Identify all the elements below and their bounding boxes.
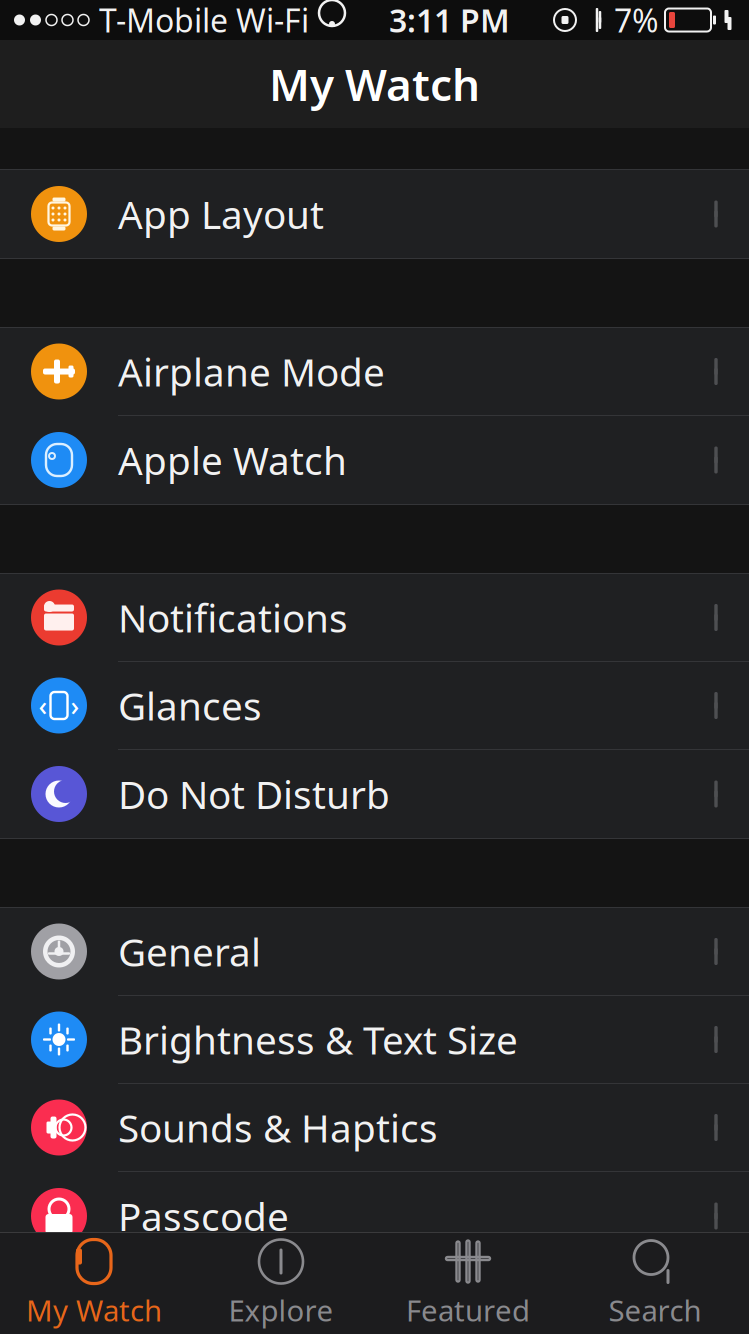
button[interactable]: Featured [374,1232,561,1334]
staticText: › [70,688,79,723]
staticText: Apple Watch [118,434,347,486]
staticText: Do Not Disturb [118,768,390,820]
button[interactable]: Notifications [0,574,749,662]
staticText: 3:11 PM [389,0,510,41]
staticText: My Watch [26,1290,162,1329]
staticText: Airplane Mode [118,346,385,397]
button[interactable]: Sounds & Haptics [0,1084,749,1172]
staticText: My Watch [269,55,480,113]
button[interactable]: Airplane Mode [0,328,749,416]
button[interactable]: App Layout [0,170,749,258]
button[interactable]: Apple Watch [0,416,749,504]
button[interactable]: Brightness & Text Size [0,996,749,1084]
staticText: Sounds & Haptics [118,1102,438,1153]
staticText: 7% [614,0,659,41]
staticText: Brightness & Text Size [118,1014,518,1065]
staticText: Notifications [118,592,348,643]
staticText: App Layout [118,188,324,240]
staticText: T-Mobile Wi-Fi [99,0,309,41]
staticText: Search [608,1290,701,1329]
button[interactable]: My Watch [0,1232,187,1334]
staticText: Explore [228,1290,333,1329]
staticText: ‹ [38,688,47,723]
staticText: Glances [118,680,262,731]
button[interactable]: Explore [187,1232,374,1334]
staticText: General [118,926,261,977]
staticText: Passcode [118,1190,289,1242]
button[interactable]: General [0,908,749,996]
button[interactable]: ‹ [0,662,749,750]
button[interactable]: Passcode [0,1172,749,1260]
staticText: Featured [406,1290,530,1329]
button[interactable]: Do Not Disturb [0,750,749,838]
button[interactable]: Search [561,1232,748,1334]
